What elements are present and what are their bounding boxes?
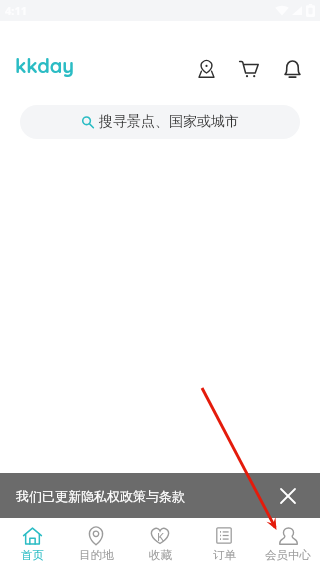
staticText: 目的地	[79, 548, 114, 562]
button[interactable]: 搜寻景点、国家或城市	[20, 105, 300, 139]
button[interactable]: 首页	[0, 518, 64, 569]
button[interactable]: Notifications	[275, 51, 310, 86]
staticText: 搜寻景点、国家或城市	[99, 113, 239, 131]
button[interactable]: K	[128, 518, 192, 569]
staticText: 首页	[21, 548, 44, 562]
staticText: kkday	[15, 53, 75, 78]
button[interactable]: 会员中心	[256, 518, 320, 569]
staticText: K	[157, 529, 164, 544]
button[interactable]: 订单	[192, 518, 256, 569]
button[interactable]: Destinations map	[189, 51, 224, 86]
staticText: 我们已更新隐私权政策与条款	[16, 488, 185, 504]
staticText: 收藏	[149, 548, 172, 562]
staticText: 4:11	[5, 3, 27, 18]
staticText: 会员中心	[265, 548, 311, 562]
staticText: 订单	[213, 548, 236, 562]
button[interactable]: Shopping cart	[231, 51, 266, 86]
button[interactable]: 目的地	[64, 518, 128, 569]
button[interactable]: Close	[255, 473, 320, 518]
